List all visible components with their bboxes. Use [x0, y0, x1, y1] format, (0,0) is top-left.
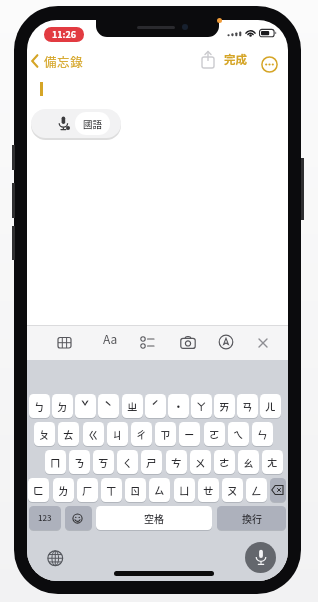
staticText: ㄉ	[57, 399, 68, 414]
button[interactable]: ㄘ	[166, 450, 187, 474]
button[interactable]	[257, 337, 269, 349]
button[interactable]: 11:26	[44, 27, 84, 42]
staticText: ㄐ	[112, 427, 123, 442]
button[interactable]: ㄚ	[191, 394, 212, 418]
button[interactable]: ㄓ	[122, 394, 143, 418]
staticText: ㄆ	[39, 427, 50, 442]
staticText: ㄩ	[179, 483, 190, 498]
button[interactable]: ㄦ	[260, 394, 281, 418]
button[interactable]: 國語	[31, 109, 121, 138]
staticText: ㄡ	[227, 483, 238, 498]
staticText: ㄖ	[130, 483, 141, 498]
staticText: ㄢ	[242, 399, 253, 414]
staticText: ㄨ	[195, 455, 206, 470]
button[interactable]	[218, 334, 234, 350]
button[interactable]: ˋ	[98, 394, 119, 418]
button[interactable]	[199, 50, 217, 70]
staticText: ˙	[175, 396, 182, 416]
staticText: ㄜ	[219, 455, 230, 470]
staticText: ㄒ	[106, 483, 117, 498]
staticText: ㄤ	[267, 455, 278, 470]
staticText: ㄑ	[122, 455, 133, 470]
button[interactable]: ㄅ	[29, 394, 50, 418]
button[interactable]: ㄞ	[214, 394, 235, 418]
button[interactable]: ㄙ	[149, 478, 170, 502]
button[interactable]: ㄡ	[222, 478, 243, 502]
button[interactable]: ㄍ	[83, 422, 104, 446]
staticText: ˊ	[151, 396, 160, 416]
staticText: ㄌ	[58, 483, 69, 498]
staticText: 國語	[83, 117, 103, 131]
button[interactable]	[140, 335, 155, 350]
button[interactable]: ㄌ	[53, 478, 74, 502]
button[interactable]: ㄔ	[131, 422, 152, 446]
staticText: ㄝ	[203, 483, 214, 498]
button[interactable]: ㄜ	[214, 450, 235, 474]
staticText: ㄈ	[33, 483, 44, 498]
button[interactable]: ㄈ	[28, 478, 49, 502]
button[interactable]: ㄐ	[107, 422, 128, 446]
button[interactable]: ㄥ	[246, 478, 267, 502]
button[interactable]: ㄇ	[45, 450, 66, 474]
button[interactable]	[65, 506, 92, 530]
button[interactable]: ㄛ	[204, 422, 225, 446]
staticText: 備忘錄	[44, 52, 84, 70]
button[interactable]	[180, 335, 196, 350]
staticText: ㄎ	[98, 455, 109, 470]
staticText: ㄥ	[251, 483, 262, 498]
button[interactable]: ˊ	[145, 394, 166, 418]
staticText: ㄣ	[257, 427, 268, 442]
button[interactable]: ㄏ	[77, 478, 98, 502]
staticText: ㄘ	[171, 455, 182, 470]
button[interactable]: Aa	[100, 329, 120, 347]
button[interactable]: ㄖ	[125, 478, 146, 502]
button[interactable]: ˙	[168, 394, 189, 418]
button[interactable]: ˇ	[75, 394, 96, 418]
button[interactable]: 完成	[224, 51, 247, 68]
button[interactable]	[270, 478, 286, 502]
button[interactable]: 備忘錄	[30, 51, 102, 71]
staticText: ㄏ	[82, 483, 93, 498]
staticText: ˇ	[81, 396, 90, 416]
staticText: 空格	[144, 511, 164, 525]
staticText: ㄚ	[196, 399, 207, 414]
button[interactable]: ㄢ	[237, 394, 258, 418]
button[interactable]	[47, 550, 64, 567]
button[interactable]: ㄋ	[69, 450, 90, 474]
button[interactable]: ㄕ	[141, 450, 162, 474]
staticText: 123	[38, 512, 52, 524]
button[interactable]: ㄎ	[93, 450, 114, 474]
staticText: ㄧ	[184, 427, 195, 442]
staticText: ㄦ	[265, 399, 276, 414]
button[interactable]: ㄑ	[117, 450, 138, 474]
staticText: ㄋ	[74, 455, 85, 470]
button[interactable]: ㄒ	[101, 478, 122, 502]
staticText: 完成	[224, 51, 247, 68]
staticText: ㄕ	[146, 455, 157, 470]
staticText: Aa	[103, 330, 118, 347]
button[interactable]: 空格	[96, 506, 212, 530]
staticText: ㄛ	[209, 427, 220, 442]
staticText: ㄅ	[34, 399, 45, 414]
button[interactable]	[57, 335, 72, 350]
button[interactable]: ㄠ	[238, 450, 259, 474]
button[interactable]: ㄊ	[58, 422, 79, 446]
staticText: ㄇ	[50, 455, 61, 470]
staticText: ㄔ	[136, 427, 147, 442]
button[interactable]	[261, 56, 278, 73]
button[interactable]: 123	[29, 506, 61, 530]
staticText: ㄙ	[154, 483, 165, 498]
button[interactable]: ㄉ	[52, 394, 73, 418]
button[interactable]	[245, 542, 276, 573]
button[interactable]: ㄣ	[252, 422, 273, 446]
button[interactable]: ㄨ	[190, 450, 211, 474]
button[interactable]: ㄤ	[262, 450, 283, 474]
button[interactable]: ㄟ	[228, 422, 249, 446]
staticText: ㄞ	[219, 399, 230, 414]
button[interactable]: ㄝ	[198, 478, 219, 502]
button[interactable]: ㄆ	[34, 422, 55, 446]
button[interactable]: ㄗ	[155, 422, 176, 446]
button[interactable]: 換行	[217, 506, 286, 530]
button[interactable]: ㄩ	[174, 478, 195, 502]
button[interactable]: ㄧ	[179, 422, 200, 446]
